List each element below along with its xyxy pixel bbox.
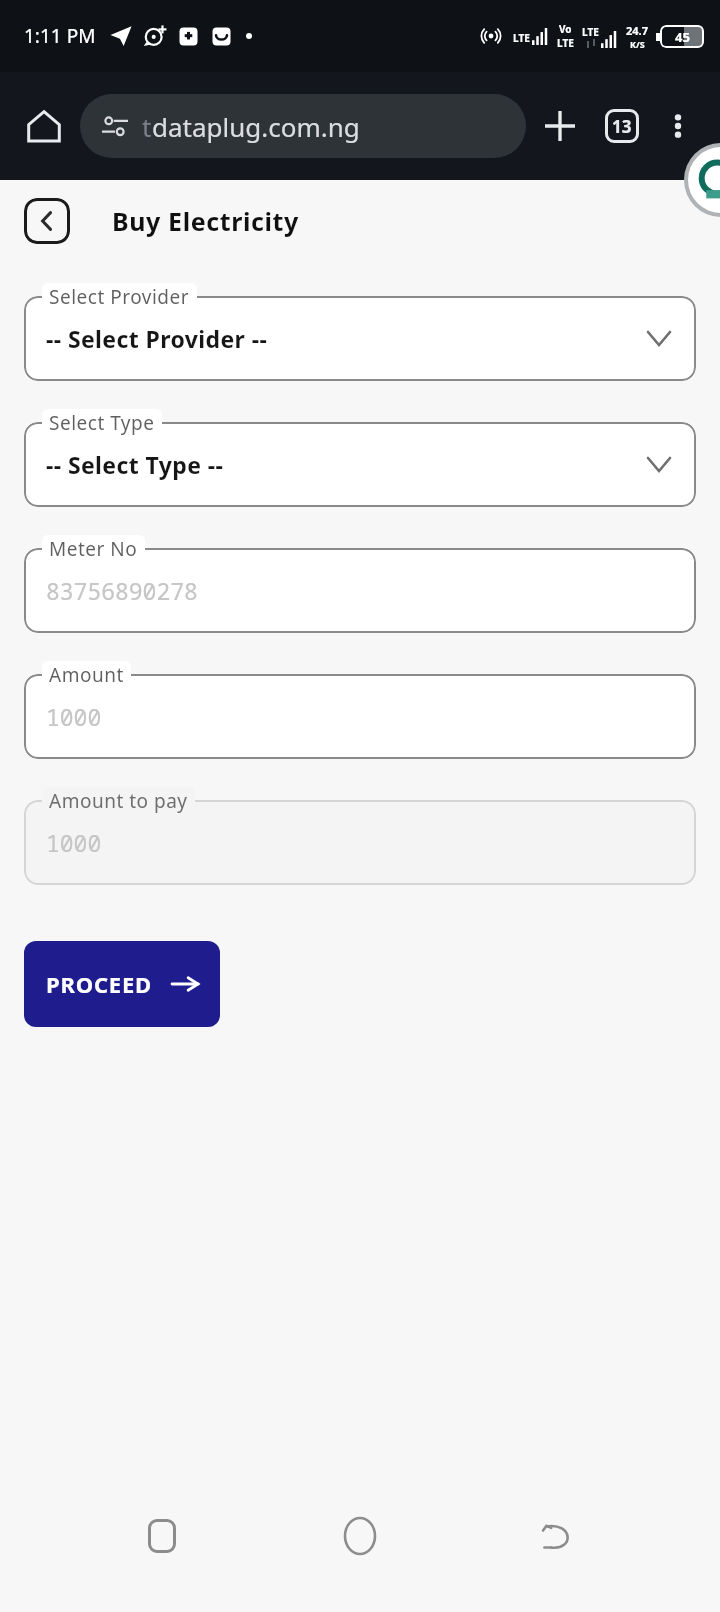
staticText: dataplug.com.ng — [152, 109, 360, 144]
staticText: LTE — [557, 36, 574, 50]
button[interactable]: More options — [654, 102, 702, 150]
button[interactable]: Home — [18, 100, 70, 152]
staticText: t — [142, 109, 152, 144]
staticText: 45 — [675, 28, 690, 46]
staticText: Amount — [49, 662, 124, 688]
staticText: 1:11 PM — [24, 23, 96, 49]
staticText: 1000 — [46, 827, 102, 858]
staticText: -- Select Provider -- — [46, 323, 268, 354]
staticText: LTE — [582, 25, 599, 39]
staticText: LTE — [513, 31, 530, 45]
staticText: Meter No — [49, 536, 138, 562]
button[interactable]: Back — [24, 198, 70, 244]
button[interactable]: Switch tabs, 13 open — [596, 100, 648, 152]
button[interactable]: t — [80, 94, 526, 158]
staticText: 1000 — [46, 701, 102, 732]
staticText: -- Select Type -- — [46, 449, 224, 480]
button[interactable]: -- Select Type -- — [24, 422, 696, 507]
button[interactable]: WhatsApp bubble — [688, 147, 720, 213]
staticText: Vo — [559, 22, 572, 36]
button[interactable]: Recent apps — [126, 1500, 198, 1572]
button[interactable]: -- Select Provider -- — [24, 296, 696, 381]
button: 1000 — [24, 800, 696, 885]
button[interactable]: New tab — [534, 100, 586, 152]
staticText: 83756890278 — [46, 575, 198, 606]
staticText: 13 — [612, 115, 632, 138]
staticText: PROCEED — [46, 969, 152, 999]
staticText: K/S — [630, 38, 645, 50]
staticText: Select Type — [49, 410, 155, 436]
button[interactable]: Home — [324, 1500, 396, 1572]
button[interactable]: 1000 — [24, 674, 696, 759]
staticText: Buy Electricity — [112, 204, 299, 238]
staticText: 24.7 — [626, 23, 648, 38]
button[interactable]: 83756890278 — [24, 548, 696, 633]
staticText: Amount to pay — [49, 788, 188, 814]
button[interactable]: PROCEED — [24, 941, 220, 1027]
button[interactable]: Back — [522, 1500, 594, 1572]
staticText: Select Provider — [49, 284, 190, 310]
